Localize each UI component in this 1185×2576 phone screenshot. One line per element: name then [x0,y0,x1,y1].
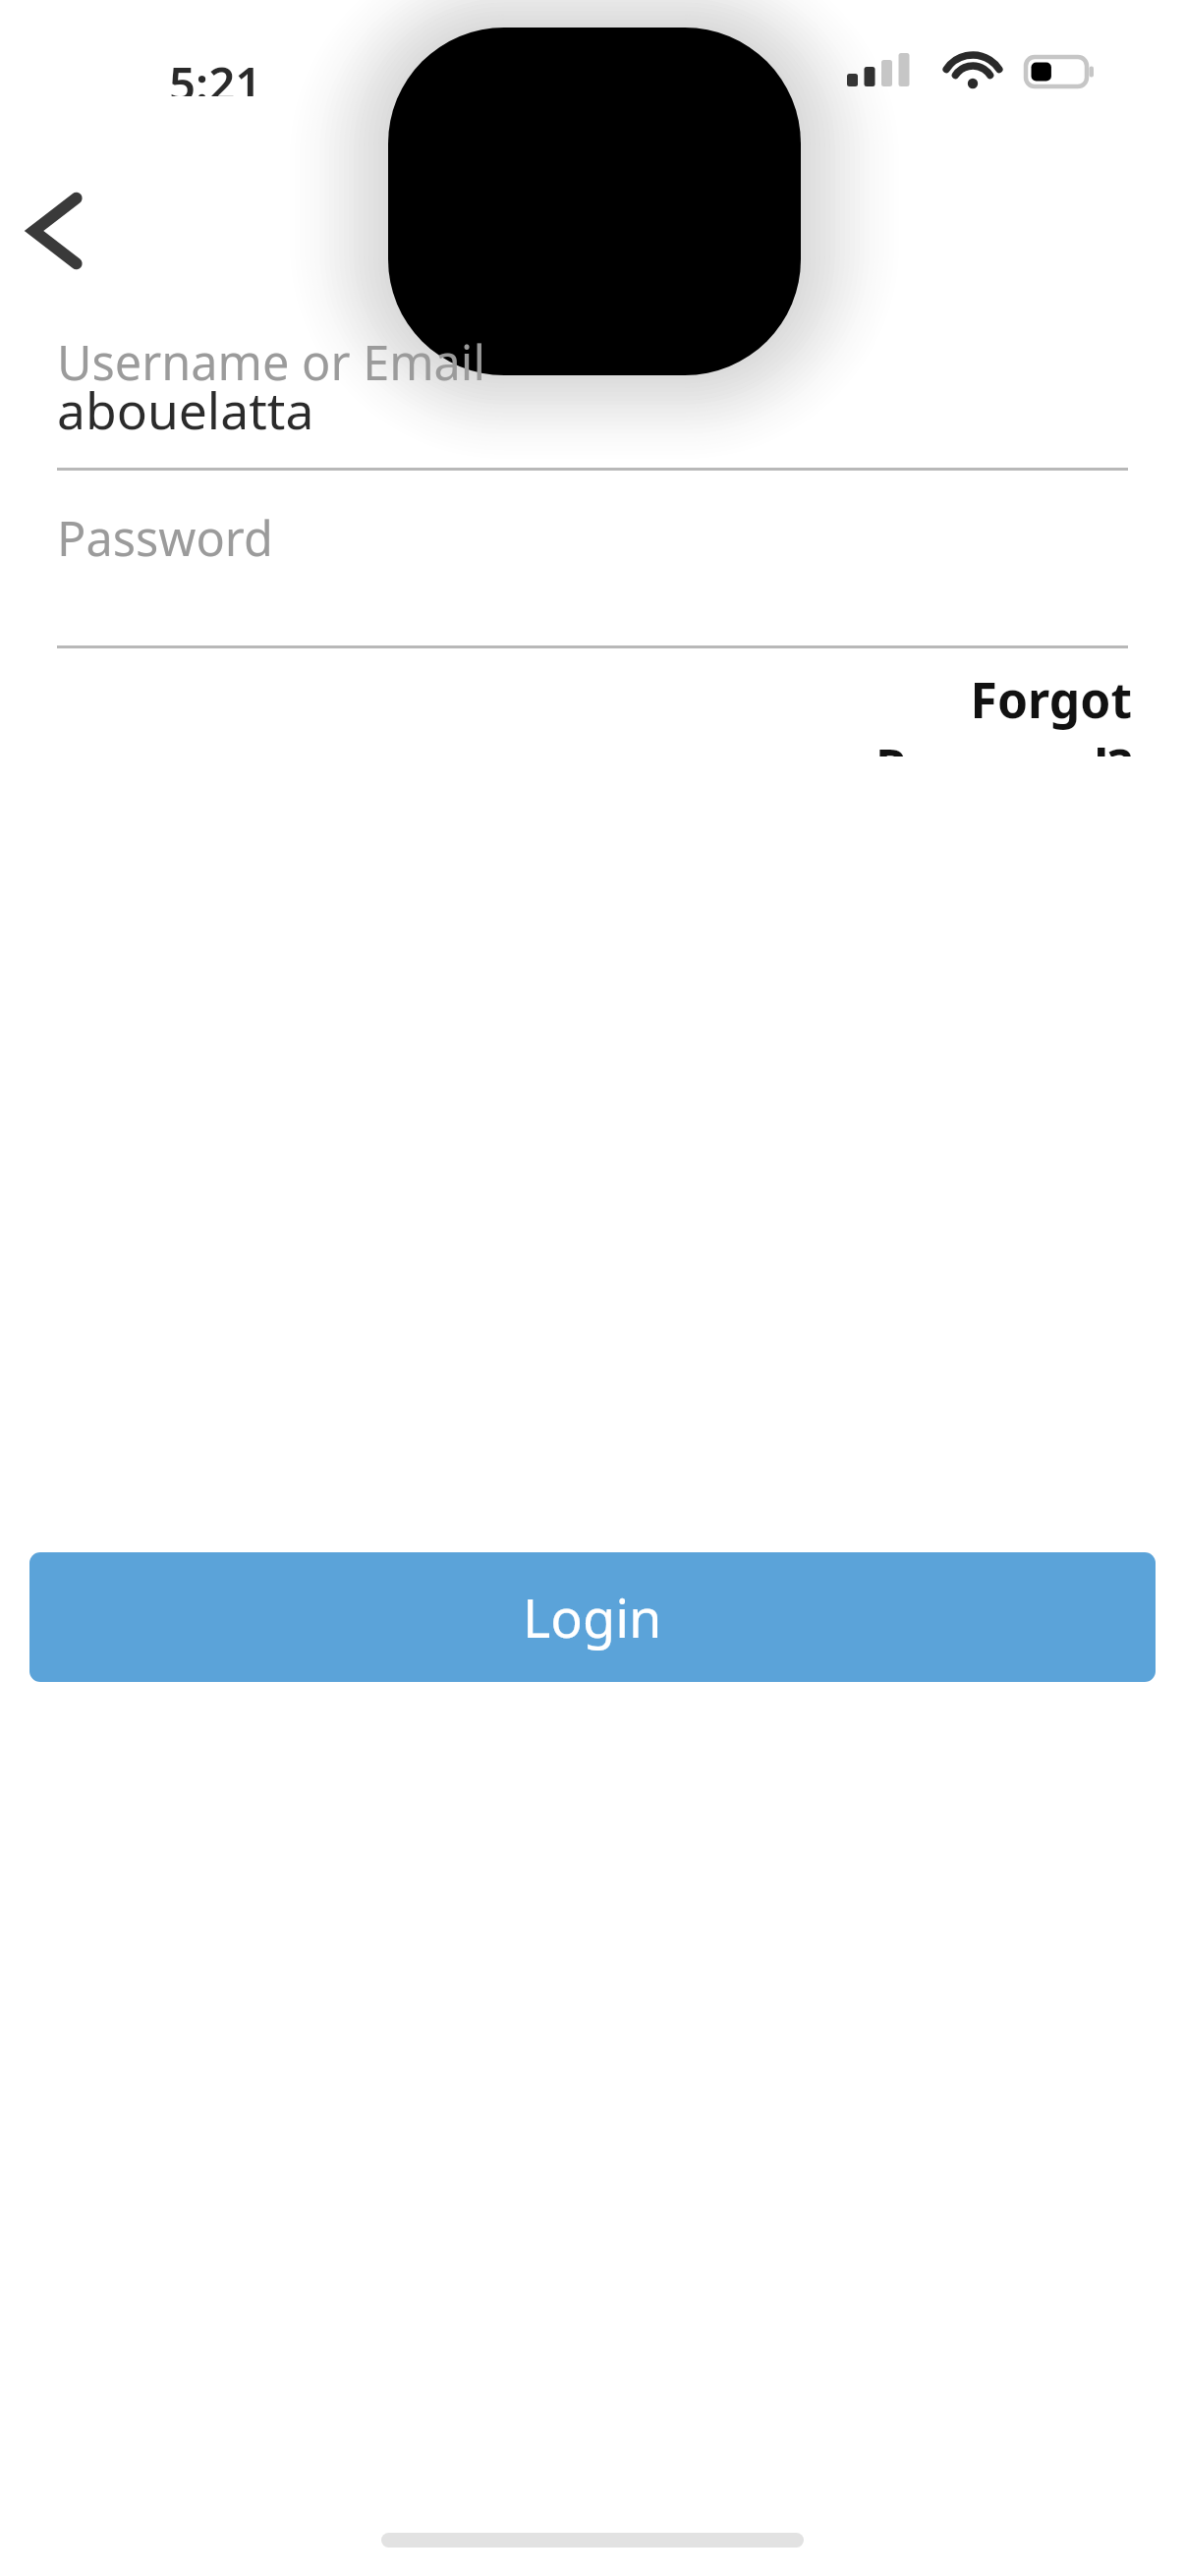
button[interactable]: Password [0,483,1185,645]
staticText: Password [57,505,273,570]
staticText: abouelatta [57,375,314,444]
staticText: Username or Email [57,329,485,394]
staticText: Login [523,1581,662,1653]
staticText: Forgot Password? [747,666,1132,756]
button[interactable]: Back [0,173,108,289]
button[interactable]: Forgot Password? [747,666,1132,756]
staticText: 5:21 [169,51,262,96]
button[interactable]: Username or Email [0,305,1185,474]
button[interactable]: Login [29,1552,1156,1682]
